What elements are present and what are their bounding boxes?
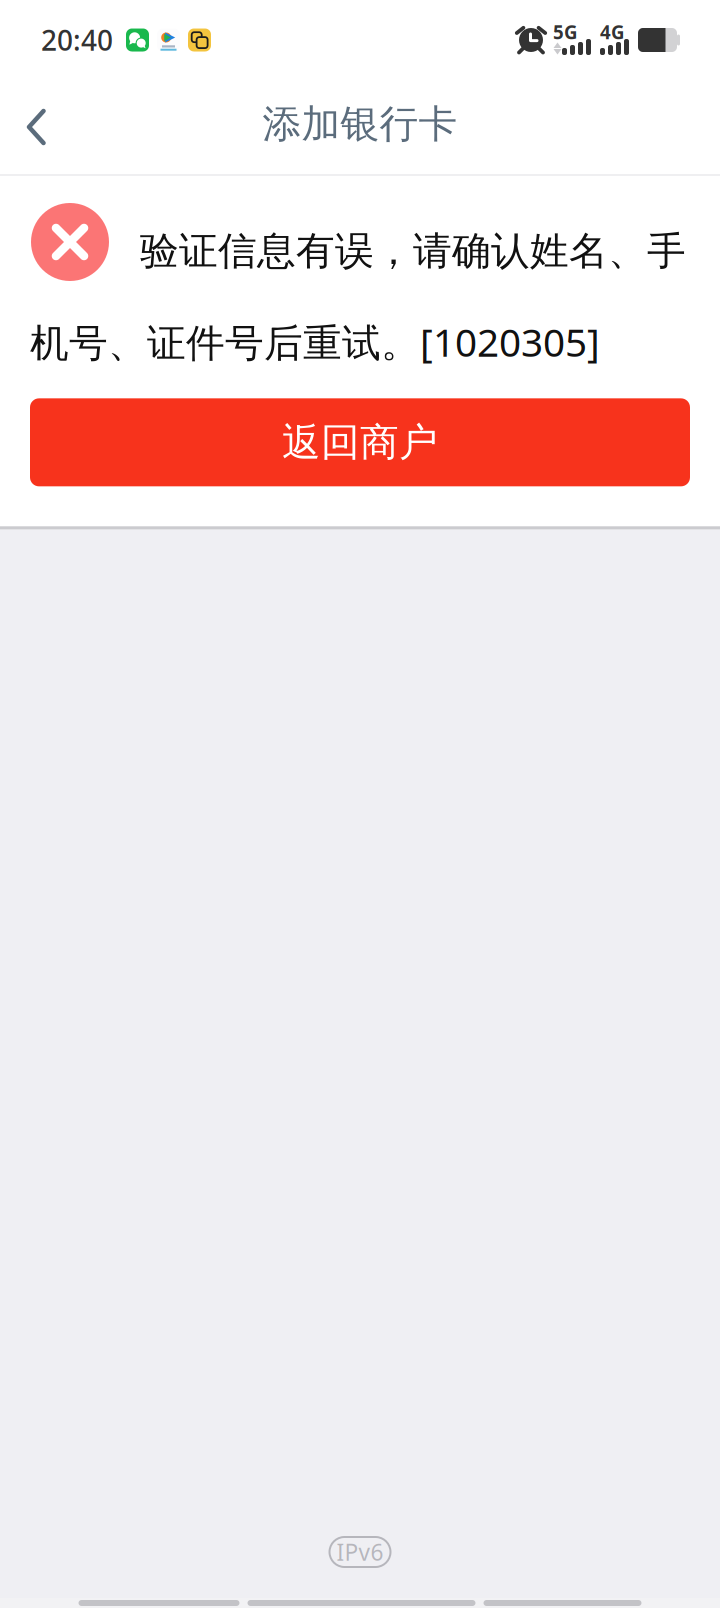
staticText: IPv6 xyxy=(336,1537,383,1567)
staticText: 返回商户 xyxy=(282,419,438,466)
button[interactable]: Back xyxy=(0,80,72,174)
staticText: 5G xyxy=(553,20,578,44)
staticText: 20:40 xyxy=(41,21,113,59)
button[interactable]: 返回商户 xyxy=(30,398,690,486)
staticText: 机号、证件号后重试。[1020305] xyxy=(30,316,600,367)
staticText: 验证信息有误，请确认姓名、手 xyxy=(140,227,686,275)
staticText: 添加银行卡 xyxy=(262,100,457,148)
staticText: 4G xyxy=(600,20,625,44)
button[interactable]: IPv6 xyxy=(329,1537,390,1567)
